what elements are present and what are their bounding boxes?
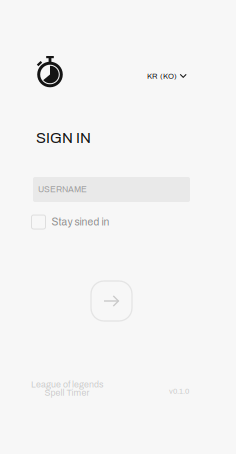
- staticText: Stay sined in: [51, 216, 109, 228]
- staticText: League of legends: [31, 380, 103, 389]
- button[interactable]: Sign in: [91, 281, 132, 321]
- staticText: SIGN IN: [36, 130, 91, 146]
- button[interactable]: Stay sined in: [31, 215, 109, 229]
- button[interactable]: KR (KO): [144, 68, 190, 84]
- staticText: v0.1.0: [169, 387, 189, 395]
- staticText: USERNAME: [38, 185, 87, 194]
- staticText: Spell Timer: [44, 388, 89, 398]
- staticText: KR (KO): [147, 72, 177, 80]
